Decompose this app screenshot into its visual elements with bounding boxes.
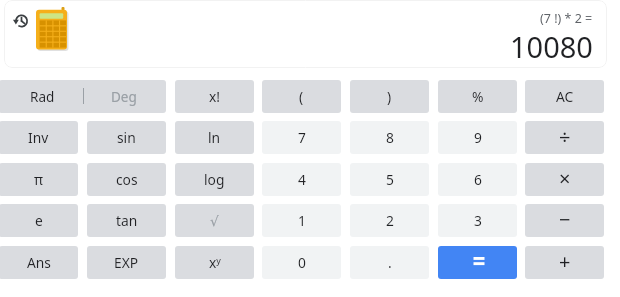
button[interactable]: x! xyxy=(175,80,254,113)
staticText: Deg xyxy=(111,88,137,106)
button[interactable]: % xyxy=(438,80,517,113)
staticText: 5 xyxy=(386,170,394,189)
button[interactable]: xʸ xyxy=(175,246,254,279)
button[interactable]: − xyxy=(525,204,604,237)
staticText: Inv xyxy=(28,128,49,147)
staticText: x! xyxy=(209,87,221,106)
staticText: ln xyxy=(208,128,221,147)
button[interactable]: ) xyxy=(350,80,429,113)
button[interactable]: 9 xyxy=(438,121,517,154)
staticText: log xyxy=(204,170,225,189)
button[interactable]: 3 xyxy=(438,204,517,237)
button[interactable]: Equals xyxy=(438,246,517,279)
staticText: 9 xyxy=(474,128,482,147)
staticText: ( xyxy=(299,87,304,106)
button[interactable]: EXP xyxy=(87,246,166,279)
button[interactable]: History xyxy=(8,8,34,34)
staticText: ÷ xyxy=(559,123,571,150)
staticText: EXP xyxy=(114,253,139,272)
staticText: 7 xyxy=(298,128,306,147)
staticText: 4 xyxy=(298,170,306,189)
button[interactable]: ÷ xyxy=(525,121,604,154)
staticText: xʸ xyxy=(209,253,221,272)
button[interactable]: + xyxy=(525,246,604,279)
staticText: cos xyxy=(116,170,138,189)
staticText: e xyxy=(35,211,43,230)
staticText: 0 xyxy=(298,253,306,272)
button[interactable]: 8 xyxy=(350,121,429,154)
staticText: × xyxy=(559,165,571,192)
button[interactable]: 4 xyxy=(262,163,341,196)
button[interactable]: . xyxy=(350,246,429,279)
staticText: Rad xyxy=(30,88,55,106)
staticText: (7 !) * 2 = xyxy=(540,10,593,27)
staticText: 3 xyxy=(474,211,482,230)
staticText: 10080 xyxy=(510,27,593,66)
button[interactable]: tan xyxy=(87,204,166,237)
staticText: Ans xyxy=(27,253,51,272)
button[interactable]: e xyxy=(0,204,78,237)
button[interactable]: × xyxy=(525,163,604,196)
staticText: + xyxy=(559,248,571,275)
staticText: √ xyxy=(210,213,219,229)
button[interactable]: Inv xyxy=(0,121,78,154)
staticText: sin xyxy=(117,128,136,147)
button[interactable]: 2 xyxy=(350,204,429,237)
button[interactable]: ln xyxy=(175,121,254,154)
button[interactable]: sin xyxy=(87,121,166,154)
staticText: AC xyxy=(556,87,574,106)
staticText: tan xyxy=(116,211,138,230)
button[interactable]: AC xyxy=(525,80,604,113)
staticText: . xyxy=(388,253,392,272)
staticText: π xyxy=(34,170,44,189)
button[interactable]: cos xyxy=(87,163,166,196)
button[interactable]: Rad xyxy=(0,80,166,113)
staticText: 1 xyxy=(298,211,306,230)
staticText: 2 xyxy=(386,211,394,230)
staticText: − xyxy=(559,206,571,233)
button[interactable]: π xyxy=(0,163,78,196)
staticText: ) xyxy=(387,87,392,106)
button[interactable]: 1 xyxy=(262,204,341,237)
button[interactable]: ( xyxy=(262,80,341,113)
button[interactable]: log xyxy=(175,163,254,196)
button[interactable]: 7 xyxy=(262,121,341,154)
button[interactable]: √ xyxy=(175,204,254,237)
button[interactable]: 6 xyxy=(438,163,517,196)
staticText: 8 xyxy=(386,128,394,147)
staticText: 6 xyxy=(474,170,482,189)
button[interactable]: 5 xyxy=(350,163,429,196)
button[interactable]: 0 xyxy=(262,246,341,279)
button[interactable]: Ans xyxy=(0,246,78,279)
staticText: % xyxy=(472,87,484,106)
